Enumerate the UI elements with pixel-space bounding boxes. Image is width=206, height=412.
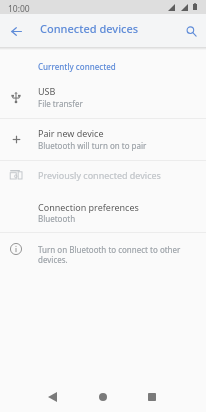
- staticText: File transfer: [38, 98, 83, 109]
- button[interactable]: Previously connected devices: [0, 159, 206, 189]
- staticText: Bluetooth will turn on to pair: [38, 140, 147, 151]
- staticText: USB: [38, 85, 56, 97]
- staticText: Previously connected devices: [38, 169, 161, 181]
- staticText: Bluetooth: [38, 213, 76, 224]
- staticText: Pair new device: [38, 127, 104, 139]
- button[interactable]: Search: [180, 20, 202, 42]
- button[interactable]: Home: [93, 387, 112, 406]
- button[interactable]: Recent apps: [142, 387, 161, 406]
- button[interactable]: Back: [5, 20, 27, 42]
- button[interactable]: Connection preferences: [0, 192, 206, 232]
- staticText: Connection preferences: [38, 201, 139, 213]
- button[interactable]: Pair new device: [0, 118, 206, 160]
- staticText: Connected devices: [40, 21, 139, 36]
- staticText: Currently connected: [38, 61, 116, 72]
- staticText: 10:00: [8, 3, 30, 15]
- button[interactable]: Back: [43, 387, 62, 406]
- staticText: Turn on Bluetooth to connect to other de…: [38, 244, 181, 265]
- button[interactable]: USB: [0, 76, 206, 118]
